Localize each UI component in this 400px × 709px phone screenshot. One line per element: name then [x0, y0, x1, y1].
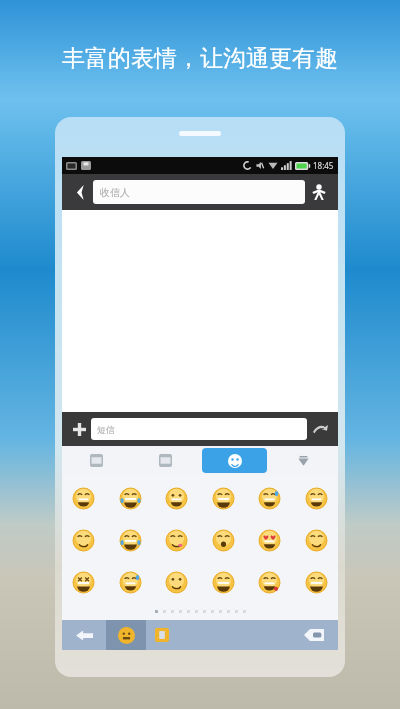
button[interactable]: Recent [64, 448, 129, 473]
button[interactable]: Emoji [68, 525, 99, 556]
button[interactable]: Emoji keyboard [106, 620, 146, 650]
button[interactable]: Stickers [133, 448, 198, 473]
button[interactable]: Emoji [301, 483, 332, 514]
button[interactable]: Emoji [68, 483, 99, 514]
button[interactable]: Contacts [305, 178, 333, 206]
button[interactable]: Symbols [146, 620, 178, 650]
button[interactable]: Emoji [301, 567, 332, 598]
staticText: 18:45 [313, 160, 334, 171]
button[interactable]: Emoji [208, 483, 239, 514]
button[interactable]: Emoji [115, 483, 146, 514]
button[interactable]: Emoji [254, 567, 285, 598]
button[interactable]: Emoji [115, 525, 146, 556]
staticText: 收信人 [100, 186, 130, 199]
button[interactable]: Emoji [161, 483, 192, 514]
button[interactable]: More [271, 448, 336, 473]
staticText: 丰富的表情，让沟通更有趣 [62, 44, 338, 73]
button[interactable]: Emoji [115, 567, 146, 598]
staticText: 短信 [97, 424, 115, 435]
button[interactable]: 短信 [91, 418, 307, 440]
button[interactable]: Emoji [254, 483, 285, 514]
button[interactable]: Delete [290, 620, 338, 650]
button[interactable]: Emoji [202, 448, 267, 473]
button[interactable]: 收信人 [93, 180, 305, 204]
button[interactable]: Emoji [208, 567, 239, 598]
button[interactable]: Send [307, 416, 333, 442]
button[interactable]: Back [67, 179, 93, 205]
button[interactable]: Emoji [301, 525, 332, 556]
button[interactable]: Emoji [161, 567, 192, 598]
button[interactable]: Emoji [254, 525, 285, 556]
button[interactable]: Emoji [208, 525, 239, 556]
button[interactable]: Emoji [68, 567, 99, 598]
button[interactable]: Back [62, 620, 106, 650]
button[interactable]: Add attachment [67, 417, 91, 441]
button[interactable]: Emoji [161, 525, 192, 556]
